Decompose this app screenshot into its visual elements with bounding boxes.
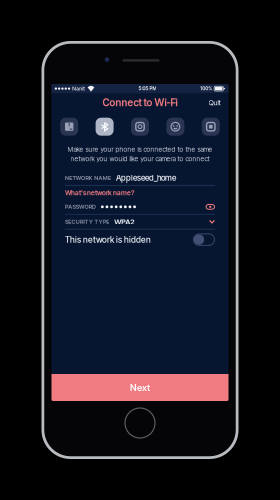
staticText: What's network name? [65,189,134,197]
button[interactable]: What's network name? [65,186,215,200]
staticText: Quit [208,98,220,107]
staticText: 100% [200,86,212,91]
staticText: NETWORK NAME [65,174,111,181]
button[interactable]: Show password [206,204,215,210]
button[interactable]: SECURITY TYPE [65,215,215,229]
button[interactable]: Quit [203,94,225,111]
staticText: network you would like your camera to co… [70,155,209,163]
staticText: PASSWORD [65,203,96,210]
button[interactable]: Step 1, unbox camera [51,116,87,138]
button[interactable]: Step 2, Bluetooth pairing [87,116,122,138]
button[interactable]: Step 4, baby profile [158,116,193,138]
button[interactable]: Next [51,374,228,401]
staticText: SECURITY TYPE [65,218,109,225]
staticText: Next [130,382,150,393]
button[interactable]: Step 3, camera setup [122,116,158,138]
staticText: Make sure your phone is connected to the… [67,145,212,153]
staticText: Appleseed_home [116,173,176,183]
staticText: WPA2 [114,217,134,226]
staticText: This network is hidden [65,235,151,245]
staticText: 5:05 PM [138,86,156,91]
staticText: Connect to Wi-Fi [102,97,177,109]
staticText: Nanit [72,85,85,92]
button[interactable]: Step 5, floor stand [193,116,228,138]
button[interactable]: This network is hidden [65,230,215,250]
